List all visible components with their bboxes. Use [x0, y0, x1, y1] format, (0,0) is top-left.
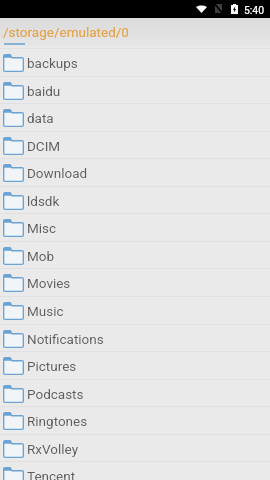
button[interactable]: Movies — [0, 269, 270, 297]
staticText: /storage/emulated/0 — [3, 24, 129, 40]
staticText: Pictures — [27, 358, 77, 374]
button[interactable]: Ringtones — [0, 407, 270, 435]
other: Wi-Fi — [196, 5, 207, 13]
button[interactable]: backups — [0, 49, 270, 77]
staticText: Tencent — [27, 468, 76, 480]
button[interactable]: Music — [0, 297, 270, 325]
button[interactable]: Notifications — [0, 325, 270, 353]
other: No SIM card — [215, 4, 222, 13]
button[interactable]: ldsdk — [0, 187, 270, 215]
staticText: ldsdk — [27, 193, 60, 209]
staticText: data — [27, 110, 54, 126]
staticText: Notifications — [27, 331, 104, 347]
button[interactable]: Misc — [0, 214, 270, 242]
staticText: baidu — [27, 83, 61, 99]
staticText: backups — [27, 55, 78, 71]
staticText: 5:40 — [244, 4, 265, 16]
button[interactable]: /storage/emulated/0 — [0, 18, 270, 48]
button[interactable]: DCIM — [0, 132, 270, 160]
staticText: Movies — [27, 275, 71, 291]
button[interactable]: RxVolley — [0, 435, 270, 463]
staticText: Download — [27, 165, 88, 181]
button[interactable]: Mob — [0, 242, 270, 270]
button[interactable]: data — [0, 104, 270, 132]
staticText: Mob — [27, 248, 55, 264]
button[interactable]: baidu — [0, 77, 270, 105]
staticText: Music — [27, 303, 64, 319]
other: Battery charging — [231, 4, 238, 14]
button[interactable]: Download — [0, 159, 270, 187]
staticText: Misc — [27, 220, 57, 236]
button[interactable]: Podcasts — [0, 380, 270, 408]
button[interactable]: Pictures — [0, 352, 270, 380]
staticText: RxVolley — [27, 441, 79, 457]
staticText: Podcasts — [27, 386, 84, 402]
staticText: DCIM — [27, 138, 61, 154]
button[interactable]: Tencent — [0, 462, 270, 480]
staticText: Ringtones — [27, 413, 88, 429]
